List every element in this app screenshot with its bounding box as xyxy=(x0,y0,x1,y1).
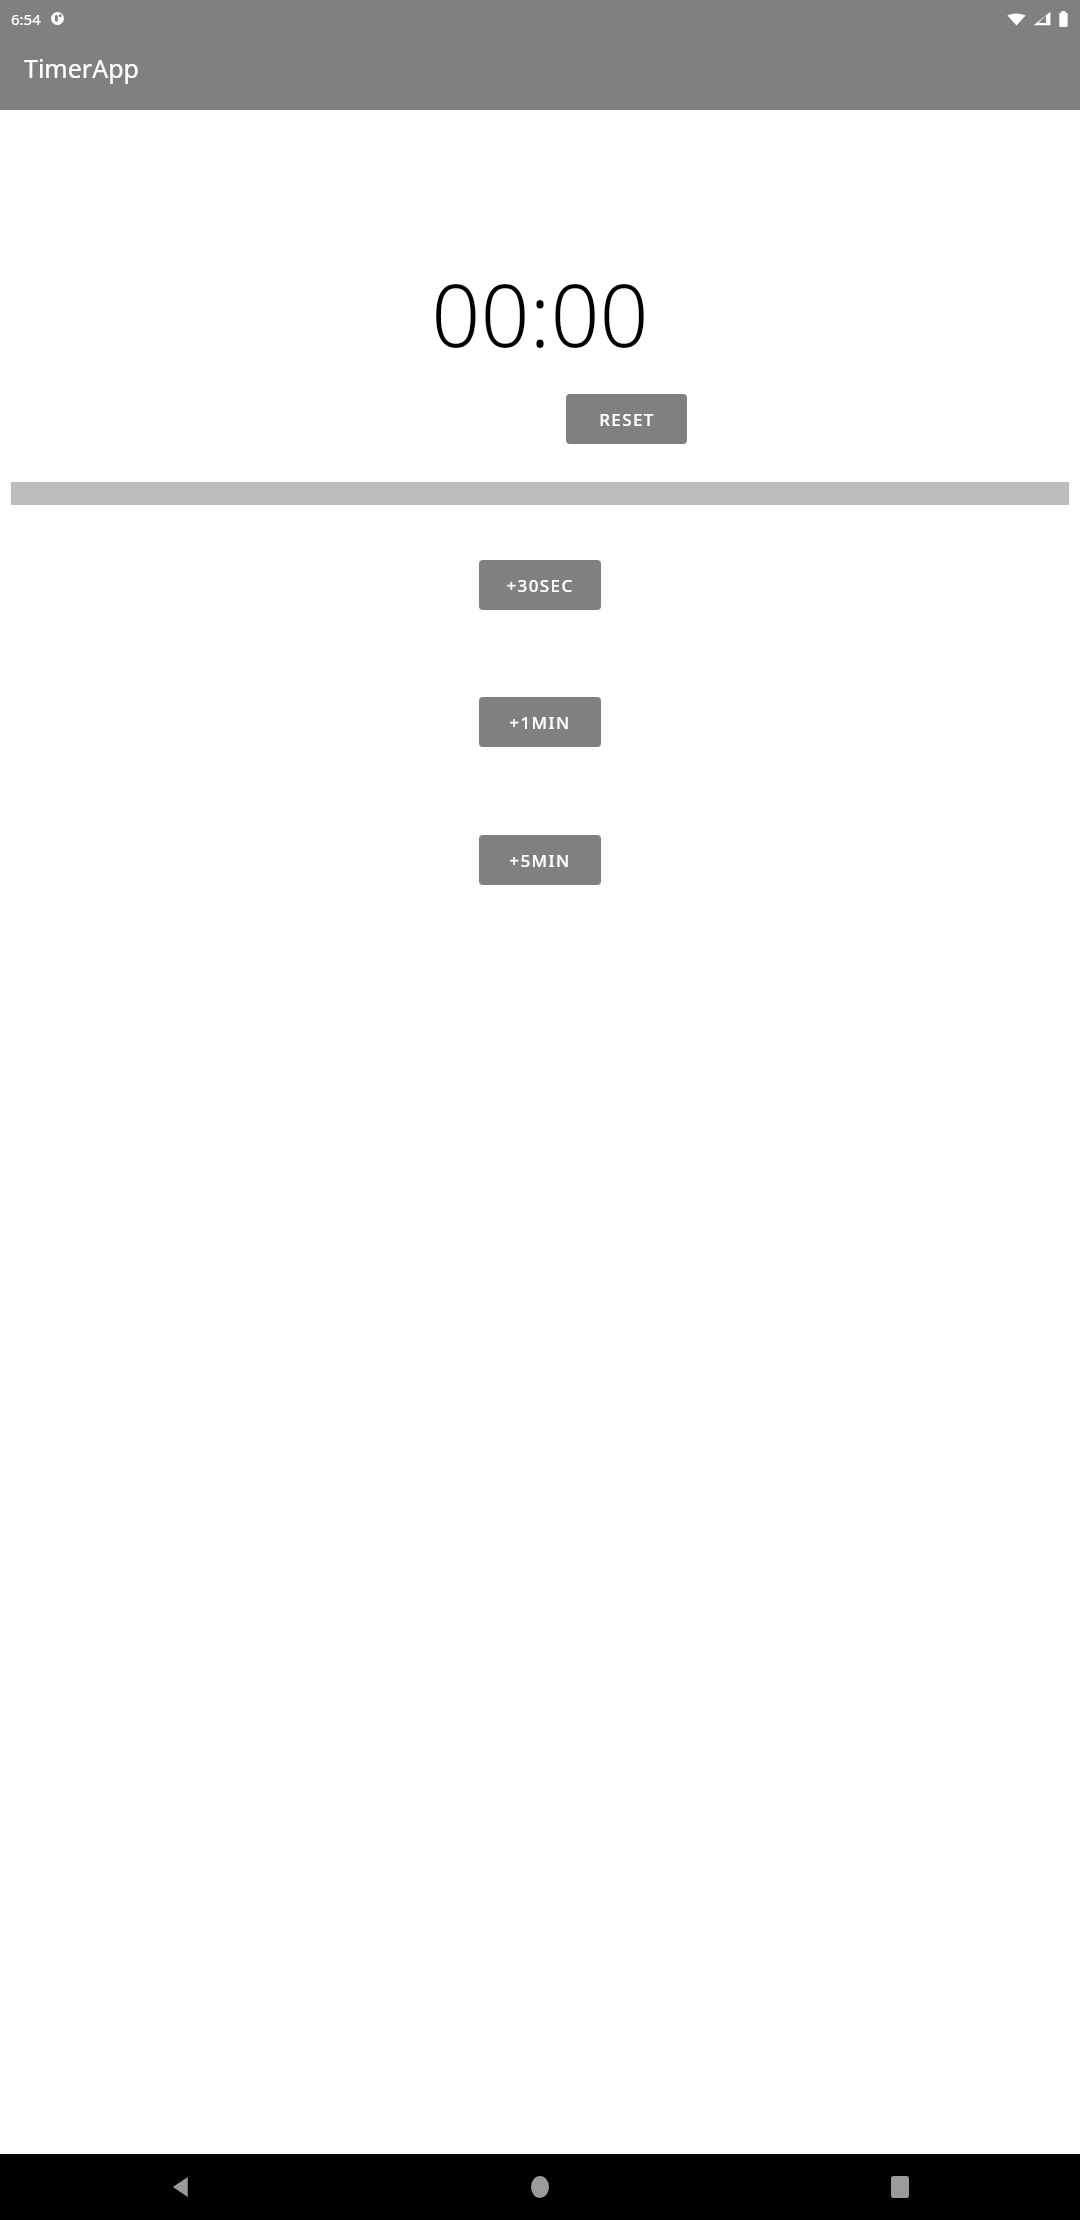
staticText: +1MIN xyxy=(509,711,571,734)
button[interactable]: RESET xyxy=(566,394,687,444)
button[interactable]: +5MIN xyxy=(479,835,601,885)
staticText: +5MIN xyxy=(509,849,571,872)
button[interactable]: Back xyxy=(0,2154,360,2220)
staticText: +30SEC xyxy=(506,574,574,597)
button[interactable]: Recent apps xyxy=(720,2154,1080,2220)
staticText: 6:54 xyxy=(11,9,41,29)
button[interactable]: +30SEC xyxy=(479,560,601,610)
staticText: TimerApp xyxy=(24,51,139,85)
button[interactable]: +1MIN xyxy=(479,697,601,747)
staticText: RESET xyxy=(599,408,655,431)
staticText: 00:00 xyxy=(431,255,649,372)
button[interactable]: Home xyxy=(360,2154,720,2220)
